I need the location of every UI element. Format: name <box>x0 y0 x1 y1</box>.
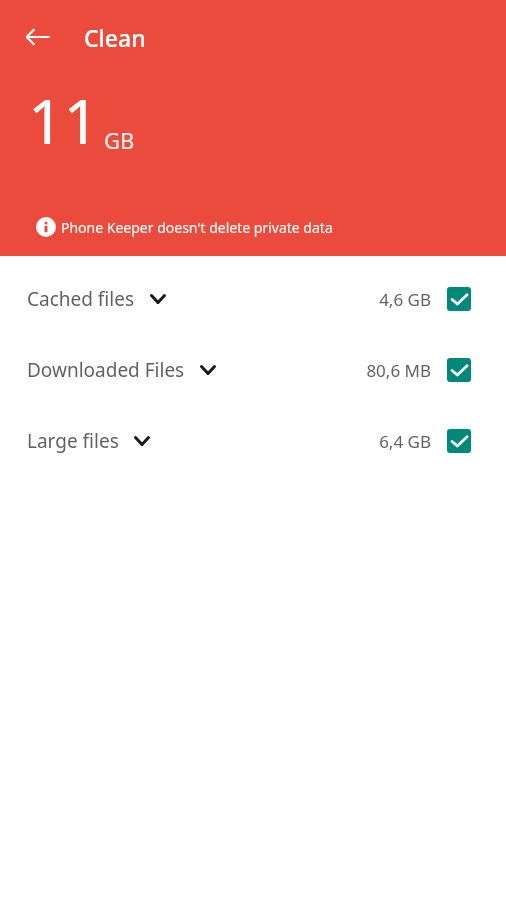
button[interactable]: Downloaded Files <box>0 342 506 398</box>
staticText: Large files <box>27 428 119 454</box>
button[interactable]: Select Large files <box>447 429 471 453</box>
staticText: Phone Keeper doesn't delete private data <box>61 218 333 237</box>
button[interactable]: Back <box>14 13 62 61</box>
button[interactable]: Select Cached files <box>447 287 471 311</box>
staticText: Cached files <box>27 286 135 312</box>
button[interactable]: Select Downloaded Files <box>447 358 471 382</box>
button[interactable]: Large files <box>0 413 506 469</box>
other: Expand Cached files <box>147 288 169 310</box>
staticText: Clean <box>84 22 146 53</box>
staticText: Downloaded Files <box>27 357 185 383</box>
other: Expand Downloaded Files <box>197 359 219 381</box>
staticText: GB <box>104 125 135 155</box>
staticText: 4,6 GB <box>379 288 431 311</box>
button[interactable]: Cached files <box>0 271 506 327</box>
staticText: 11 <box>28 78 99 162</box>
staticText: 80,6 MB <box>366 359 431 382</box>
staticText: 6,4 GB <box>379 430 431 453</box>
other: Expand Large files <box>131 430 153 452</box>
